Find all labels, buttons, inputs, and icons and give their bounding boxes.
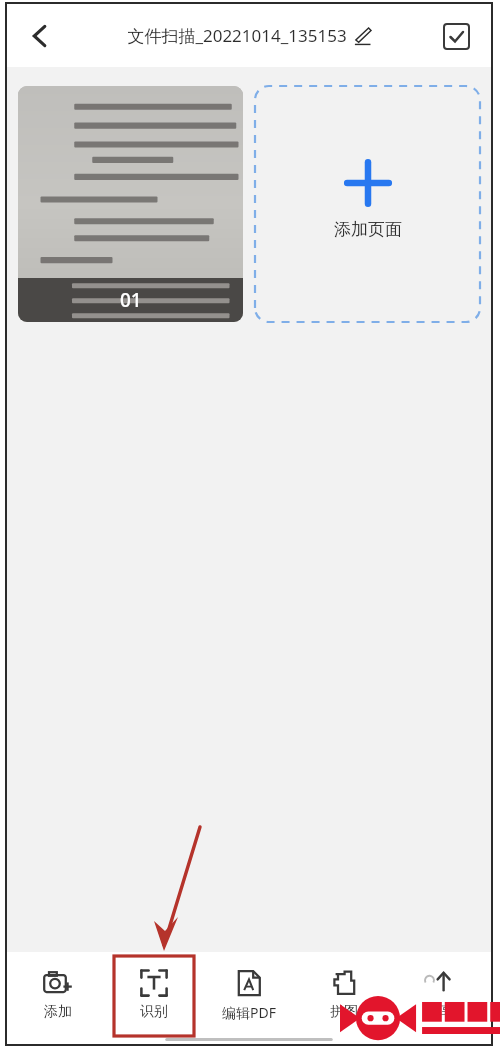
staticText: 文件扫描_20221014_135153	[127, 24, 347, 47]
staticText: 添加页面	[334, 219, 402, 240]
button[interactable]: 识别	[110, 956, 198, 1036]
button[interactable]: 分享	[396, 956, 484, 1036]
button[interactable]: 01	[18, 86, 243, 322]
staticText: 识别	[140, 1003, 168, 1021]
button[interactable]: 编辑PDF	[205, 956, 293, 1036]
staticText: 拼图	[330, 1003, 358, 1021]
button[interactable]: 拼图	[300, 956, 388, 1036]
staticText: 分享	[426, 1003, 454, 1021]
staticText: 添加	[44, 1003, 72, 1021]
button[interactable]: Done	[435, 15, 477, 57]
staticText: 01	[120, 287, 142, 313]
button[interactable]: 添加页面	[255, 86, 480, 322]
staticText: 编辑PDF	[222, 1003, 276, 1022]
button[interactable]: 文件扫描_20221014_135153	[127, 24, 372, 47]
button[interactable]: 添加	[14, 956, 102, 1036]
button[interactable]: Back	[17, 13, 63, 59]
